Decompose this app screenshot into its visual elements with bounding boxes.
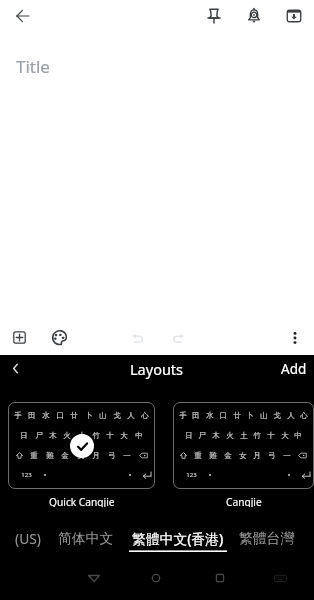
button[interactable]: Add: [274, 355, 314, 382]
staticText: 尸: [35, 431, 43, 440]
staticText: 火: [226, 431, 234, 440]
staticText: 廿: [233, 411, 241, 420]
staticText: 繁體中文(香港): [132, 529, 224, 548]
button[interactable]: 手: [8, 402, 155, 507]
button[interactable]: Undo: [122, 322, 153, 353]
staticText: 戈: [113, 411, 121, 420]
staticText: 竹: [92, 431, 100, 440]
staticText: 人: [127, 411, 135, 420]
staticText: 山: [260, 411, 268, 420]
staticText: 手: [14, 411, 22, 420]
staticText: 大: [120, 431, 128, 440]
button[interactable]: 繁體台灣: [236, 530, 298, 551]
staticText: 十: [267, 431, 275, 440]
staticText: 金: [224, 451, 232, 460]
staticText: 水: [42, 411, 50, 420]
staticText: 手: [179, 411, 187, 420]
staticText: 水: [206, 411, 214, 420]
staticText: 大: [281, 431, 289, 440]
staticText: 简体中文: [58, 530, 114, 547]
staticText: 日: [20, 431, 28, 440]
button[interactable]: Back: [7, 0, 39, 32]
staticText: 123: [181, 471, 202, 479]
staticText: Cangjie: [226, 495, 262, 507]
staticText: 一: [123, 451, 131, 460]
staticText: 中: [294, 431, 302, 440]
staticText: 口: [56, 411, 64, 420]
staticText: 123: [16, 471, 37, 479]
staticText: Add: [281, 360, 307, 377]
staticText: 女: [239, 451, 247, 460]
staticText: 弓: [108, 451, 116, 460]
button[interactable]: Hide keyboard: [265, 563, 295, 593]
staticText: 人: [287, 411, 295, 420]
staticText: 重: [30, 451, 38, 460]
staticText: 難: [46, 451, 54, 460]
staticText: 山: [99, 411, 107, 420]
button[interactable]: Back: [79, 563, 109, 593]
staticText: 廿: [70, 411, 78, 420]
button[interactable]: (US): [12, 529, 44, 552]
button[interactable]: Reminder: [234, 0, 274, 32]
staticText: 木: [212, 431, 220, 440]
staticText: 金: [61, 451, 69, 460]
staticText: 弓: [268, 451, 276, 460]
staticText: 一: [283, 451, 291, 460]
staticText: Title: [16, 55, 50, 78]
staticText: 日: [185, 431, 193, 440]
staticText: 土: [78, 431, 86, 440]
button[interactable]: Home: [141, 563, 171, 593]
button[interactable]: 手: [173, 402, 314, 507]
staticText: 難: [209, 451, 217, 460]
staticText: 田: [192, 411, 200, 420]
button[interactable]: 繁體中文(香港): [129, 529, 227, 552]
staticText: 中: [135, 431, 143, 440]
staticText: 竹: [253, 431, 261, 440]
button[interactable]: 简体中文: [55, 530, 117, 551]
button[interactable]: More options: [279, 322, 310, 353]
staticText: 卜: [246, 411, 254, 420]
button[interactable]: Pin: [194, 0, 234, 32]
staticText: 繁體台灣: [239, 530, 295, 547]
staticText: 月: [92, 451, 100, 460]
staticText: Quick Cangjie: [49, 495, 115, 507]
staticText: 月: [253, 451, 261, 460]
staticText: 卜: [85, 411, 93, 420]
staticText: Layouts: [130, 359, 184, 379]
staticText: 田: [28, 411, 36, 420]
staticText: 木: [49, 431, 57, 440]
staticText: 十: [106, 431, 114, 440]
staticText: 土: [240, 431, 248, 440]
button[interactable]: Archive: [274, 0, 314, 32]
button[interactable]: Recents: [205, 563, 235, 593]
staticText: (US): [15, 529, 41, 548]
staticText: 戈: [273, 411, 281, 420]
staticText: 重: [194, 451, 202, 460]
staticText: 女: [77, 451, 85, 460]
button[interactable]: Redo: [162, 322, 193, 353]
button[interactable]: Back: [0, 355, 30, 382]
staticText: 火: [63, 431, 71, 440]
staticText: 心: [300, 411, 308, 420]
staticText: 口: [219, 411, 227, 420]
button[interactable]: Color palette: [44, 322, 75, 353]
staticText: 尸: [198, 431, 206, 440]
button[interactable]: Add: [4, 322, 35, 353]
staticText: 心: [141, 411, 149, 420]
